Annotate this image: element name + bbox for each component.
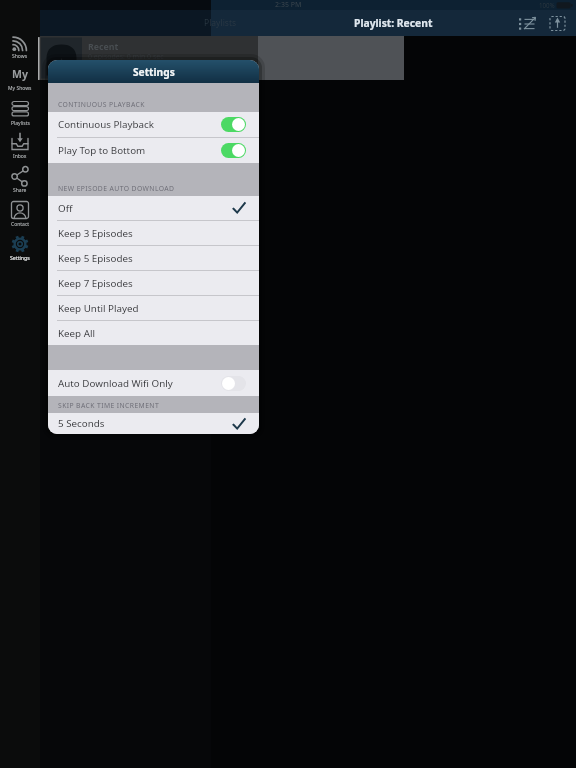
staticText: Keep All	[58, 327, 96, 340]
staticText: 100%	[539, 1, 555, 9]
staticText: Inbox	[13, 153, 27, 160]
staticText: Contact	[11, 221, 30, 228]
staticText: Auto Download Wifi Only	[58, 377, 173, 390]
staticText: Keep Until Played	[58, 302, 139, 315]
staticText: Playlists	[204, 17, 237, 29]
staticText: Play Top to Bottom	[58, 144, 146, 157]
staticText: Continuous Playback	[58, 118, 154, 131]
staticText: 5 Seconds	[58, 417, 105, 430]
staticText: Settings	[133, 65, 175, 79]
staticText: Playlist: Recent	[354, 16, 433, 30]
staticText: NEW EPISODE AUTO DOWNLOAD	[58, 184, 175, 193]
staticText: CONTINUOUS PLAYBACK	[58, 100, 145, 109]
staticText: SKIP BACK TIME INCREMENT	[58, 401, 160, 410]
staticText: Recent	[88, 41, 119, 53]
staticText: Keep 5 Episodes	[58, 252, 133, 265]
staticText: Shows	[12, 53, 28, 60]
staticText: 2:35 PM	[275, 0, 302, 10]
staticText: Settings	[10, 254, 30, 261]
staticText: Keep 7 Episodes	[58, 277, 133, 290]
staticText: Playlists	[11, 120, 30, 127]
staticText: Keep 3 Episodes	[58, 227, 133, 240]
staticText: My Shows	[8, 85, 32, 92]
staticText: Share	[13, 187, 27, 194]
staticText: My	[12, 67, 28, 81]
staticText: 0 episodes: 0 min 0 sec	[88, 52, 164, 62]
staticText: Off	[58, 202, 73, 215]
